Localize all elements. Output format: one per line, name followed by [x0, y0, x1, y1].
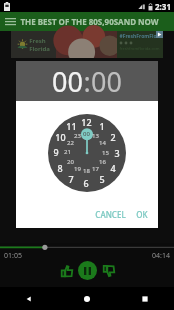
staticText: 2:31 — [155, 1, 171, 12]
button[interactable]: Pause — [78, 261, 97, 280]
staticText: 15 — [102, 149, 109, 157]
staticText: 21 — [64, 148, 71, 156]
staticText: OK — [136, 209, 148, 220]
staticText: #FreshFromFlo — [119, 33, 157, 40]
button[interactable]: CANCEL — [90, 206, 131, 223]
staticText: CANCEL — [95, 209, 126, 220]
staticText: THE BEST OF THE 80S,90SAND NOW — [20, 16, 159, 27]
staticText: 10 — [55, 131, 66, 143]
staticText: 22 — [67, 139, 74, 147]
staticText: 00 — [83, 130, 90, 138]
button[interactable]: Clock dial, hour selection — [48, 114, 126, 192]
staticText: freshfromflorida.com — [119, 46, 160, 51]
button[interactable]: Thumbs down — [100, 262, 117, 279]
button[interactable]: OK — [131, 206, 158, 223]
button[interactable]: Recent apps — [116, 287, 174, 310]
button[interactable]: Fresh — [11, 31, 163, 58]
staticText: Florida — [29, 45, 50, 53]
staticText: 6 — [83, 177, 89, 189]
staticText: 11 — [66, 120, 77, 132]
staticText: 01:05 — [4, 251, 22, 261]
staticText: 20 — [67, 158, 74, 166]
staticText: 19 — [74, 165, 81, 173]
staticText: 3 — [114, 147, 120, 159]
staticText: 1 — [99, 120, 105, 132]
staticText: 5 — [99, 173, 105, 185]
staticText: 18 — [83, 167, 90, 175]
staticText: 9 — [53, 146, 59, 158]
button[interactable]: Home — [58, 287, 116, 310]
staticText: 04:14 — [152, 251, 170, 261]
staticText: 00 — [52, 63, 83, 100]
staticText: 2 — [110, 131, 116, 143]
staticText: 4 — [110, 162, 116, 174]
button[interactable]: 00 — [91, 63, 122, 100]
staticText: : — [83, 63, 91, 100]
staticText: 14 — [99, 139, 106, 147]
staticText: 12 — [81, 116, 92, 128]
button[interactable]: Back — [0, 287, 58, 310]
staticText: 13 — [92, 132, 99, 140]
staticText: 7 — [68, 173, 74, 185]
staticText: Fresh — [29, 37, 46, 45]
button[interactable] — [0, 243, 174, 250]
staticText: 8 — [57, 162, 63, 174]
staticText: 23 — [74, 132, 81, 140]
button[interactable]: 00 — [52, 63, 83, 100]
button[interactable]: Open navigation menu — [0, 12, 20, 31]
button[interactable]: Thumbs up — [58, 262, 75, 279]
staticText: 17 — [92, 165, 99, 173]
staticText: 16 — [99, 158, 106, 166]
staticText: 00 — [91, 63, 122, 100]
